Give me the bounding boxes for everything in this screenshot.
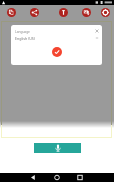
staticText: Language: [15, 30, 30, 34]
button[interactable]: Speak: [34, 143, 81, 153]
button[interactable]: Close: [93, 27, 101, 35]
button[interactable]: Delete: [7, 8, 16, 17]
button[interactable]: Language: [11, 25, 102, 65]
button[interactable]: Settings: [101, 8, 110, 17]
button[interactable]: Share: [30, 8, 39, 17]
staticText: English (US): [15, 36, 35, 41]
button[interactable]: Apply: [52, 47, 62, 57]
button[interactable]: Keyboard: [82, 8, 91, 17]
button[interactable]: Text size: [59, 8, 68, 17]
